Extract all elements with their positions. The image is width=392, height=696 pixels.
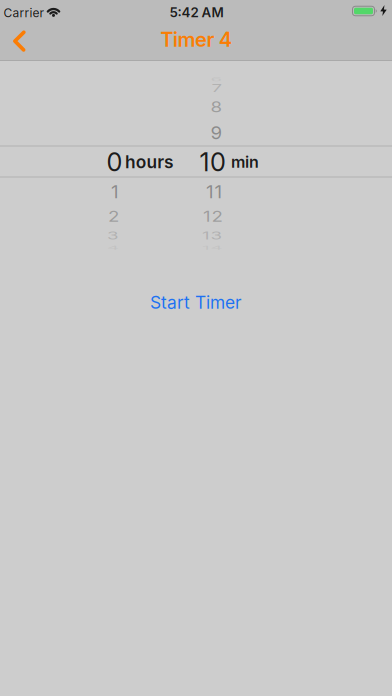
staticText: 13 xyxy=(202,224,222,246)
button[interactable]: Back xyxy=(7,25,31,57)
staticText: 9 xyxy=(210,121,222,143)
staticText: 11 xyxy=(206,180,222,202)
staticText: 3 xyxy=(107,224,119,246)
staticText: hours xyxy=(125,152,174,172)
staticText: 5:42 AM xyxy=(169,5,223,20)
staticText: 12 xyxy=(203,205,222,227)
staticText: 14 xyxy=(202,236,222,258)
staticText: 2 xyxy=(108,205,119,227)
staticText: 6 xyxy=(210,68,222,90)
staticText: 4 xyxy=(107,236,119,258)
staticText: 0 xyxy=(106,147,122,177)
button[interactable]: Start Timer xyxy=(140,284,252,321)
staticText: min xyxy=(231,153,259,171)
staticText: Timer 4 xyxy=(160,28,232,51)
staticText: 1 xyxy=(111,180,119,202)
staticText: 8 xyxy=(210,96,222,118)
staticText: 7 xyxy=(211,77,222,99)
staticText: 10 xyxy=(199,147,226,177)
staticText: Carrier xyxy=(3,6,44,20)
staticText: Start Timer xyxy=(150,292,242,313)
